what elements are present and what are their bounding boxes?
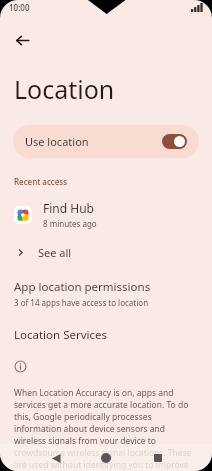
- button[interactable]: App location permissions: [0, 278, 212, 309]
- button[interactable]: See all: [0, 242, 212, 263]
- staticText: Use location: [25, 134, 89, 149]
- button[interactable]: Recent apps: [148, 448, 168, 468]
- staticText: 10:00: [9, 2, 30, 13]
- staticText: When Location Accuracy is on, apps and s…: [14, 387, 198, 471]
- button[interactable]: Use location toggle, on: [162, 134, 187, 149]
- button[interactable]: Use location: [13, 125, 199, 158]
- staticText: App location permissions: [14, 279, 151, 295]
- staticText: 3 of 14 apps have access to location: [14, 297, 149, 308]
- staticText: See all: [38, 245, 72, 260]
- staticText: Find Hub: [43, 200, 94, 216]
- button[interactable]: Back: [0, 18, 44, 62]
- staticText: Location: [14, 72, 115, 106]
- staticText: Location Services: [14, 327, 107, 343]
- button[interactable]: Back: [46, 448, 66, 468]
- button[interactable]: Find Hub: [0, 198, 212, 231]
- button[interactable]: Location Services: [0, 326, 212, 344]
- staticText: Recent access: [14, 176, 68, 187]
- button[interactable]: Home: [96, 448, 116, 468]
- staticText: 8 minutes ago: [43, 218, 97, 229]
